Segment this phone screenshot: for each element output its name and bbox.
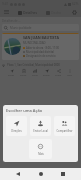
staticText: Perto (32, 74, 38, 77)
button[interactable]: Settings (71, 9, 78, 16)
button[interactable]: Rotas (7, 69, 16, 77)
staticText: Plaza 1, San Cristóbal, Municipalidad 00… (7, 63, 60, 67)
button[interactable]: Menu (3, 9, 10, 16)
staticText: Abierto ahora · 8:00–17:00 (26, 46, 60, 50)
button[interactable]: Plaza 1, San Cristóbal, Municipalidad 00… (2, 62, 79, 68)
staticText: Designación de servicio (26, 54, 56, 58)
button[interactable]: Recents (58, 169, 68, 179)
staticText: Municipalidade (10, 26, 32, 30)
staticText: Direções (11, 129, 22, 133)
staticText: Enviar Local (33, 129, 48, 133)
staticText: Rotas (8, 74, 15, 77)
button[interactable]: Mais (29, 139, 52, 159)
staticText: Enviar (43, 74, 50, 77)
button[interactable]: Home (36, 169, 46, 179)
staticText: Detalhes (23, 10, 38, 15)
staticText: Escolher uma Ação (6, 108, 43, 113)
button[interactable]: SAN JUAN BAUTISTA (2, 33, 79, 60)
button[interactable]: Compartilhar (54, 116, 75, 136)
staticText: Salvar (20, 74, 27, 77)
staticText: Municipalidad distrital (26, 50, 55, 54)
button[interactable]: Salvar (19, 69, 28, 77)
button[interactable]: Back (13, 169, 23, 179)
button[interactable]: Mais (66, 69, 74, 77)
staticText: Detalhes de ... (2, 19, 21, 23)
staticText: Mais (67, 74, 73, 77)
staticText: Compartilhar (56, 129, 73, 133)
staticText: Mais (38, 152, 44, 156)
staticText: MUNICIPALIDAD (23, 41, 46, 45)
button[interactable]: Perto (31, 69, 39, 77)
button[interactable]: Share (54, 69, 63, 77)
button[interactable]: Detalhes (17, 10, 39, 15)
button[interactable]: Dados (45, 10, 63, 15)
staticText: Share (55, 74, 62, 77)
button[interactable]: Direções (6, 116, 27, 136)
button[interactable]: Enviar Local (30, 116, 51, 136)
staticText: SAN JUAN BAUTISTA (23, 35, 59, 40)
button[interactable]: Municipalidade (2, 24, 79, 31)
button[interactable]: Enviar (42, 69, 51, 77)
